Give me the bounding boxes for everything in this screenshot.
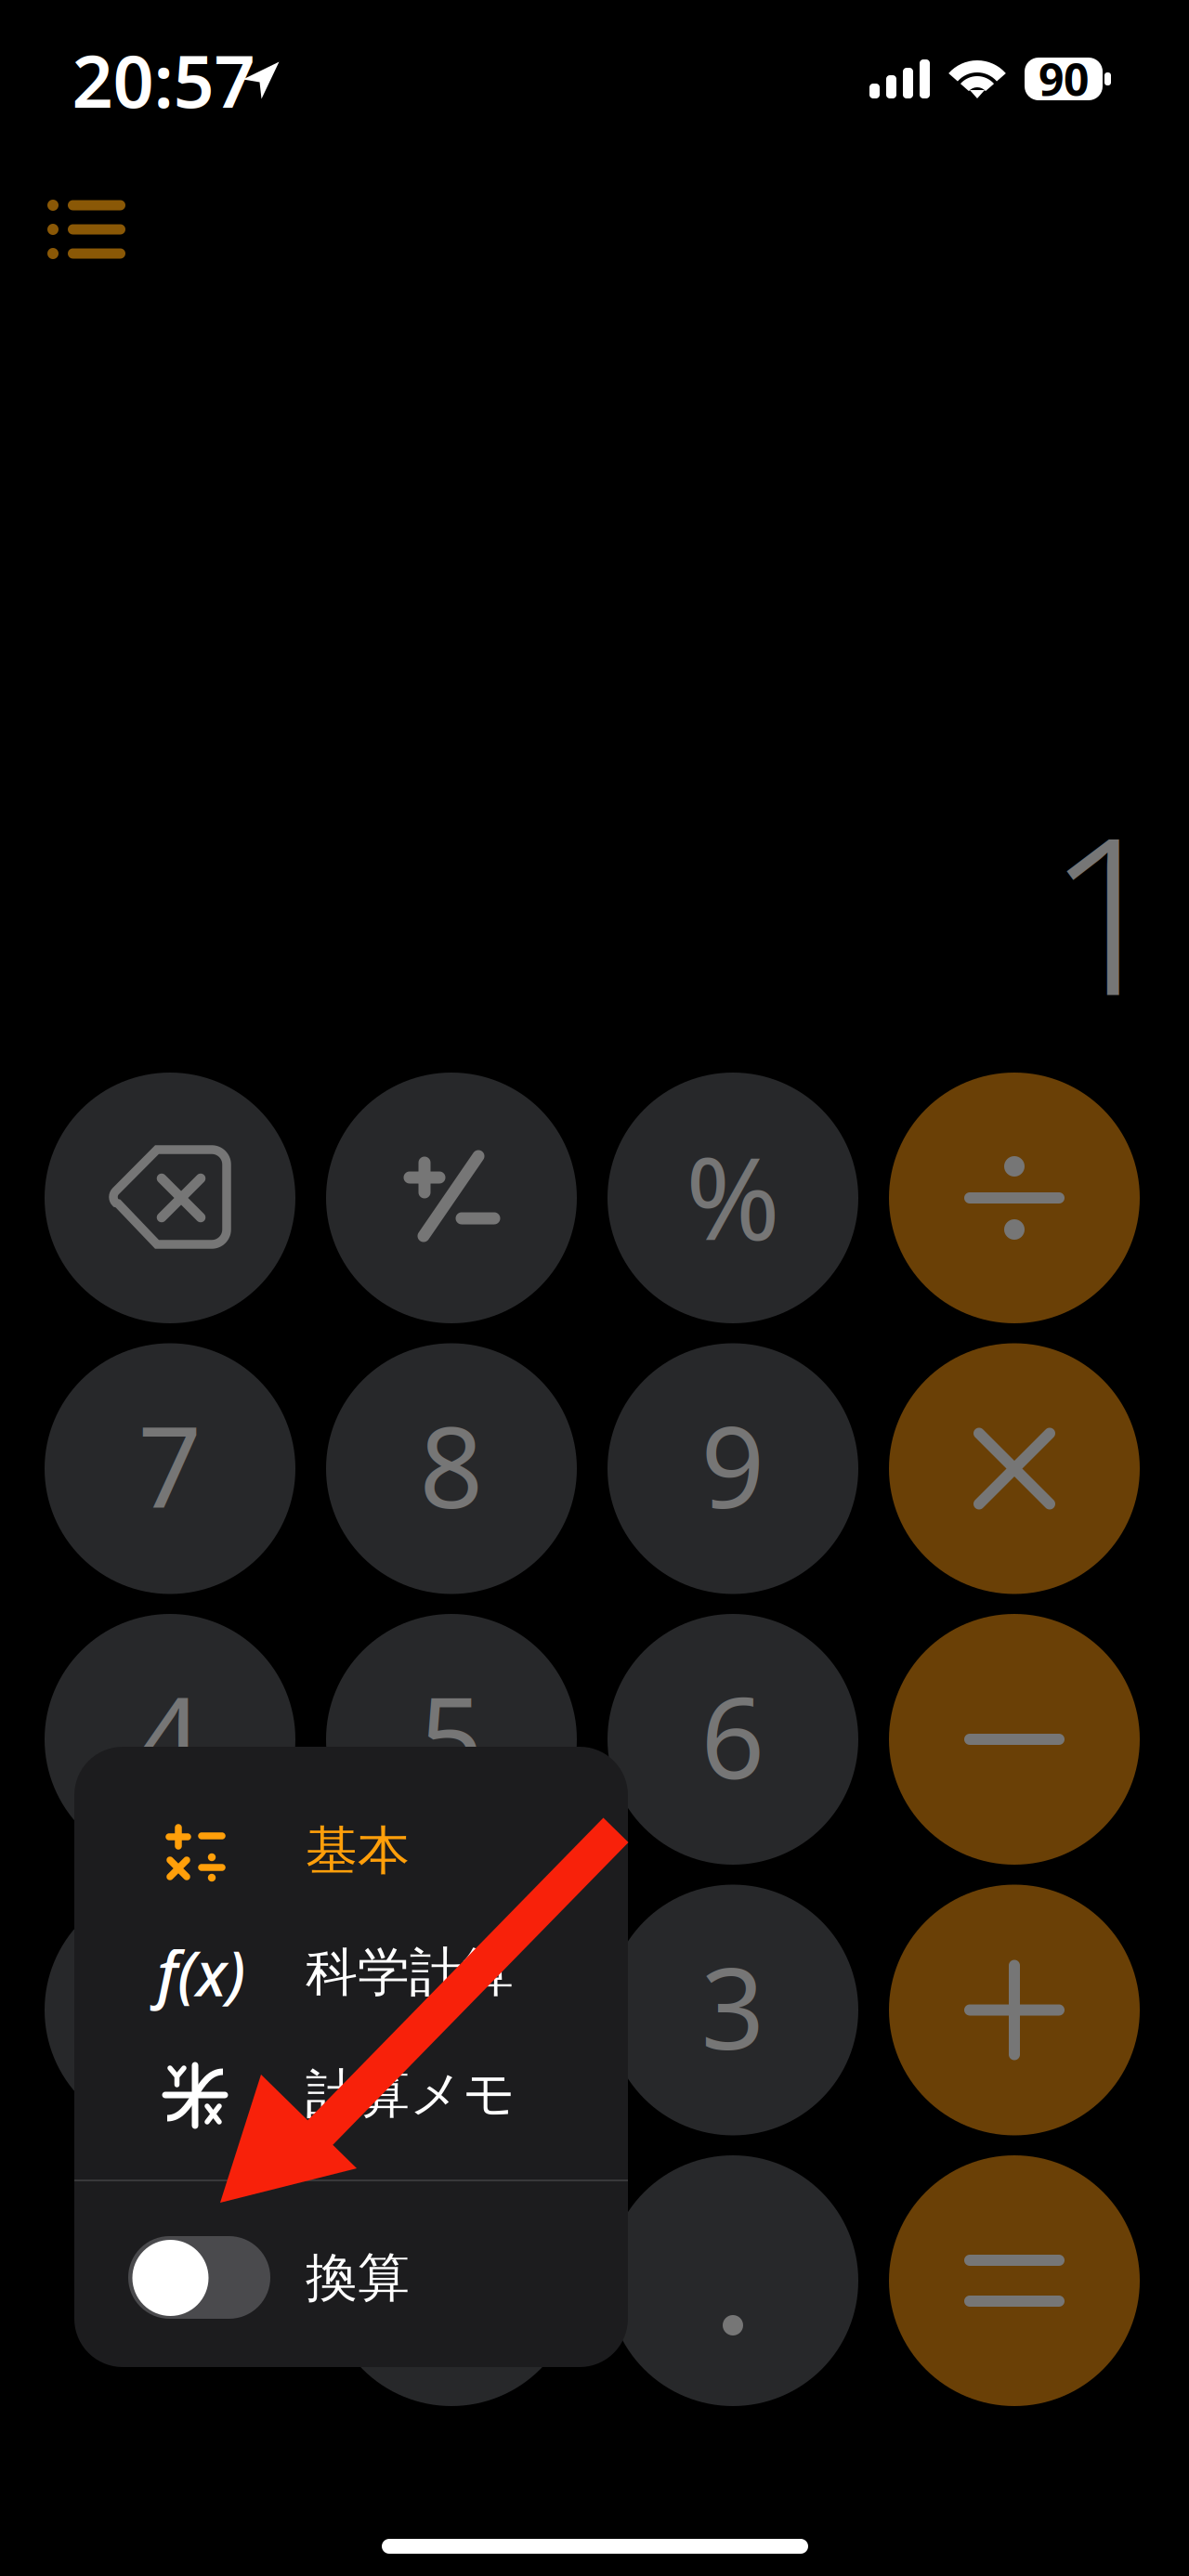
staticText: % bbox=[686, 1120, 780, 1272]
staticText: f(x) bbox=[157, 1931, 245, 2013]
staticText: 科学計算 bbox=[306, 1940, 514, 2004]
button[interactable]: 換算 bbox=[0, 0, 1189, 2576]
staticText: 1 bbox=[1046, 767, 1169, 1055]
staticText: 2 bbox=[419, 1932, 483, 2080]
staticText: 7 bbox=[138, 1391, 202, 1539]
staticText: 90 bbox=[1039, 49, 1089, 108]
staticText: 6 bbox=[701, 1662, 765, 1810]
staticText: 9 bbox=[701, 1391, 765, 1539]
button[interactable]: Calculator modes bbox=[21, 169, 151, 290]
staticText: 1 bbox=[138, 1932, 202, 2080]
staticText: 4 bbox=[138, 1662, 202, 1810]
staticText: 3 bbox=[701, 1932, 765, 2080]
staticText: 換算 bbox=[306, 2246, 410, 2310]
staticText: 20:57 bbox=[72, 32, 255, 128]
staticText: 基本 bbox=[306, 1819, 410, 1883]
staticText: 計算メモ bbox=[306, 2062, 516, 2126]
staticText: 5 bbox=[419, 1662, 483, 1810]
staticText: 8 bbox=[419, 1391, 483, 1539]
